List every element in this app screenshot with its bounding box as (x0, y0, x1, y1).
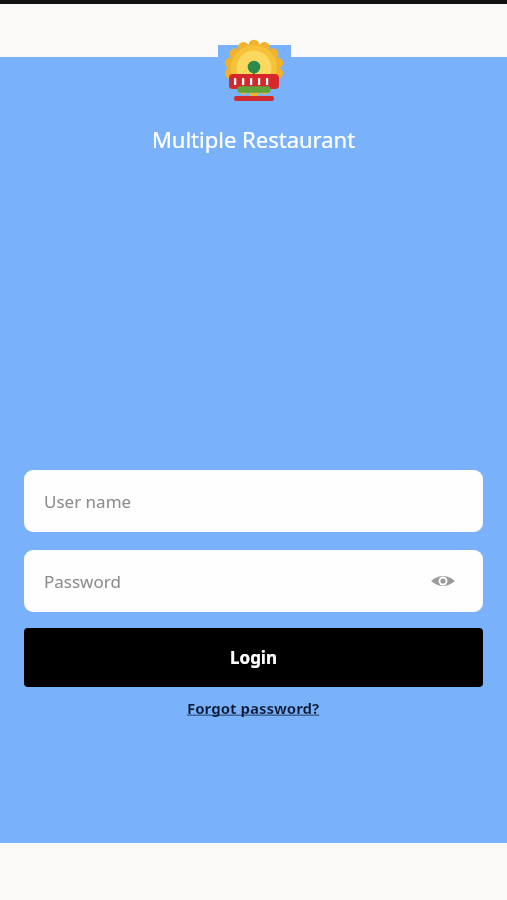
staticText: Login (230, 646, 278, 669)
staticText: Forgot password? (187, 698, 320, 718)
button[interactable]: Password (24, 550, 483, 612)
button[interactable]: Forgot password? (187, 698, 320, 718)
button[interactable]: User name (24, 470, 483, 532)
staticText: Multiple Restaurant (0, 124, 507, 154)
staticText: Password (44, 570, 121, 593)
button[interactable]: Show password (427, 565, 459, 597)
staticText: User name (44, 490, 132, 513)
button[interactable]: Login (24, 628, 483, 687)
